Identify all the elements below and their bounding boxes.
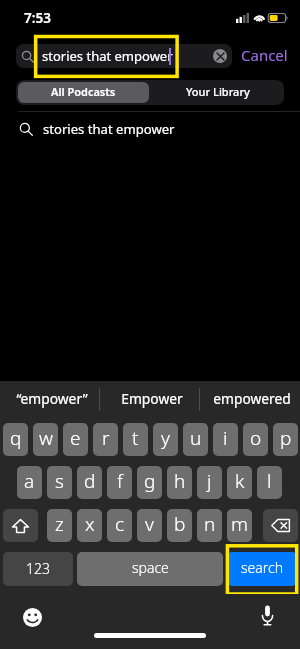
button[interactable]: a xyxy=(17,466,42,499)
button[interactable]: search xyxy=(227,552,297,586)
staticText: search xyxy=(241,558,284,577)
staticText: n xyxy=(204,511,216,537)
button[interactable]: j xyxy=(197,466,222,499)
staticText: c xyxy=(115,511,125,537)
button[interactable]: k xyxy=(227,466,252,499)
staticText: z xyxy=(55,511,64,537)
staticText: Your Library xyxy=(186,84,250,99)
button[interactable]: l xyxy=(257,466,282,499)
staticText: empowered xyxy=(213,389,291,408)
staticText: a xyxy=(24,468,35,494)
button[interactable]: Cancel xyxy=(241,45,288,65)
staticText: f xyxy=(117,468,123,494)
button[interactable]: q xyxy=(3,423,28,456)
staticText: y xyxy=(161,425,170,451)
staticText: e xyxy=(70,425,81,451)
button[interactable]: empowered xyxy=(200,381,300,415)
staticText: x xyxy=(85,511,95,537)
staticText: h xyxy=(174,468,186,494)
staticText: q xyxy=(10,425,22,451)
staticText: Empower xyxy=(121,389,183,408)
staticText: r xyxy=(102,425,110,451)
button[interactable]: stories that empower xyxy=(0,111,300,145)
staticText: space xyxy=(132,558,169,577)
staticText: “empower” xyxy=(16,389,88,408)
staticText: stories that empower xyxy=(42,47,173,65)
button[interactable]: Dictation xyxy=(260,604,275,627)
button[interactable]: Shift xyxy=(3,509,38,542)
button[interactable]: space xyxy=(77,552,223,586)
button[interactable]: Delete xyxy=(263,509,298,542)
staticText: j xyxy=(207,468,212,494)
staticText: m xyxy=(231,511,248,537)
button[interactable]: g xyxy=(137,466,162,499)
button[interactable]: Clear text xyxy=(213,49,227,63)
button[interactable]: t xyxy=(123,423,148,456)
button[interactable]: u xyxy=(183,423,208,456)
button[interactable]: r xyxy=(93,423,118,456)
button[interactable]: d xyxy=(77,466,102,499)
button[interactable]: 123 xyxy=(3,552,73,586)
button[interactable]: i xyxy=(213,423,238,456)
button[interactable]: p xyxy=(273,423,298,456)
staticText: b xyxy=(174,511,186,537)
button[interactable]: w xyxy=(33,423,58,456)
button[interactable]: c xyxy=(107,509,132,542)
button[interactable]: h xyxy=(167,466,192,499)
staticText: d xyxy=(84,468,96,494)
button[interactable]: n xyxy=(197,509,222,542)
staticText: 123 xyxy=(26,559,50,578)
button[interactable]: z xyxy=(47,509,72,542)
staticText: t xyxy=(132,425,139,451)
button[interactable]: Empower xyxy=(100,381,200,415)
staticText: l xyxy=(267,468,272,494)
staticText: s xyxy=(55,468,64,494)
button[interactable]: o xyxy=(243,423,268,456)
button[interactable]: y xyxy=(153,423,178,456)
button[interactable]: m xyxy=(227,509,252,542)
button[interactable]: x xyxy=(77,509,102,542)
button[interactable]: Your Library xyxy=(151,82,282,103)
button[interactable]: e xyxy=(63,423,88,456)
staticText: All Podcasts xyxy=(51,84,116,99)
staticText: i xyxy=(223,425,228,451)
button[interactable]: stories that empower xyxy=(16,44,232,68)
staticText: o xyxy=(250,425,262,451)
staticText: k xyxy=(235,468,245,494)
button[interactable]: f xyxy=(107,466,132,499)
staticText: u xyxy=(190,425,202,451)
button[interactable]: b xyxy=(167,509,192,542)
staticText: 7:53 xyxy=(24,9,51,27)
staticText: stories that empower xyxy=(43,120,175,138)
staticText: p xyxy=(280,425,292,451)
staticText: v xyxy=(145,511,154,537)
button[interactable]: s xyxy=(47,466,72,499)
button[interactable]: “empower” xyxy=(0,381,100,415)
button[interactable]: v xyxy=(137,509,162,542)
button[interactable]: Emoji keyboard xyxy=(23,608,42,627)
staticText: g xyxy=(144,468,156,494)
button[interactable]: All Podcasts xyxy=(18,82,149,103)
staticText: w xyxy=(39,425,53,451)
